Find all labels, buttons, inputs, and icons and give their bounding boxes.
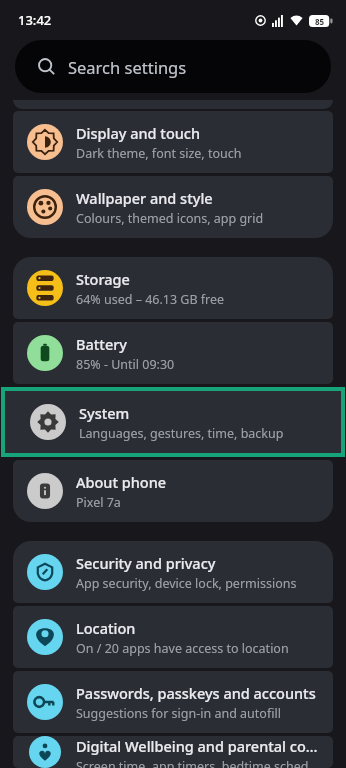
other: Storage: [27, 270, 63, 306]
staticText: Wallpaper and style: [76, 188, 213, 208]
staticText: Screen time, app timers, bedtime schedul…: [76, 758, 319, 768]
button[interactable]: Gear: [1, 387, 345, 457]
staticText: 85% - Until 09:30: [76, 356, 175, 373]
button[interactable]: Storage: [13, 257, 333, 319]
other: Pin: [27, 619, 63, 655]
staticText: Search settings: [68, 56, 187, 78]
staticText: Display and touch: [76, 123, 201, 143]
button[interactable]: Search settings: [15, 40, 331, 93]
staticText: Suggestions for sign-in and autofill: [76, 705, 281, 722]
button[interactable]: Battery: [13, 322, 333, 384]
button[interactable]: Brightness: [13, 111, 333, 173]
other: Key: [27, 684, 63, 720]
staticText: 85: [315, 16, 325, 27]
staticText: On / 20 apps have access to location: [76, 640, 289, 657]
other: Gear: [30, 404, 66, 440]
staticText: Passwords, passkeys and accounts: [76, 683, 316, 703]
other: Brightness: [27, 124, 63, 160]
button[interactable]: Pin: [13, 606, 333, 668]
other: Palette: [27, 189, 63, 225]
other: Wellbeing: [27, 736, 63, 768]
staticText: Dark theme, font size, touch: [76, 145, 242, 162]
staticText: 64% used – 46.13 GB free: [76, 291, 225, 308]
staticText: App security, device lock, permissions: [76, 575, 297, 592]
staticText: 13:42: [18, 11, 52, 29]
button[interactable]: Wellbeing: [13, 736, 333, 768]
staticText: Security and privacy: [76, 553, 216, 573]
staticText: Storage: [76, 269, 130, 289]
staticText: Languages, gestures, time, backup: [79, 425, 284, 442]
staticText: Colours, themed icons, app grid: [76, 210, 264, 227]
staticText: About phone: [76, 472, 167, 492]
button[interactable]: Phone: [13, 460, 333, 522]
button[interactable]: Key: [13, 671, 333, 733]
other: Shield: [27, 554, 63, 590]
staticText: Digital Wellbeing and parental controls: [76, 736, 319, 756]
staticText: Location: [76, 618, 136, 638]
staticText: System: [79, 403, 130, 423]
other: Battery: [27, 335, 63, 371]
staticText: Battery: [76, 334, 127, 354]
button[interactable]: Palette: [13, 176, 333, 238]
staticText: Pixel 7a: [76, 494, 121, 511]
button[interactable]: Shield: [13, 541, 333, 603]
other: Phone: [27, 473, 63, 509]
